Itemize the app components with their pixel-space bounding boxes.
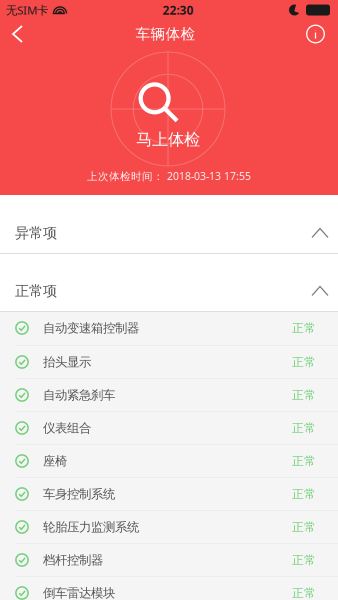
staticText: 正常	[292, 321, 316, 335]
button[interactable]: 仪表组合	[0, 412, 338, 445]
button[interactable]: Info	[295, 19, 338, 49]
staticText: 正常	[292, 454, 316, 468]
staticText: 正常	[292, 355, 316, 369]
button[interactable]: 轮胎压力监测系统	[0, 511, 338, 544]
staticText: 正常	[292, 421, 316, 435]
button[interactable]: 档杆控制器	[0, 544, 338, 577]
staticText: 倒车雷达模块	[43, 585, 115, 600]
staticText: 正常	[292, 586, 316, 600]
staticText: 正常	[292, 487, 316, 501]
button[interactable]: 异常项	[0, 195, 338, 254]
staticText: 座椅	[43, 453, 67, 469]
staticText: 自动紧急刹车	[43, 387, 115, 403]
button[interactable]: 自动变速箱控制器	[0, 312, 338, 346]
staticText: 正常项	[15, 282, 57, 300]
staticText: 上次体检时间： 2018-03-13 17:55	[87, 169, 251, 183]
staticText: 正常	[292, 388, 316, 402]
button[interactable]: 倒车雷达模块	[0, 577, 338, 600]
staticText: 22:30	[162, 2, 193, 18]
staticText: 自动变速箱控制器	[43, 320, 139, 336]
button[interactable]: 自动紧急刹车	[0, 379, 338, 412]
button[interactable]: 车身控制系统	[0, 478, 338, 511]
staticText: 无SIM卡	[6, 2, 48, 18]
button[interactable]: 马上体检	[108, 79, 228, 153]
staticText: 档杆控制器	[43, 552, 103, 568]
button[interactable]: 抬头显示	[0, 346, 338, 379]
button[interactable]: 座椅	[0, 445, 338, 478]
staticText: 车辆体检	[135, 25, 195, 43]
staticText: 马上体检	[136, 129, 200, 150]
staticText: 车身控制系统	[43, 486, 115, 502]
button[interactable]: Back	[0, 19, 36, 49]
staticText: 正常	[292, 520, 316, 534]
staticText: 抬头显示	[43, 354, 91, 370]
staticText: 仪表组合	[43, 420, 91, 436]
staticText: 正常	[292, 553, 316, 567]
button[interactable]: 正常项	[0, 254, 338, 312]
staticText: 轮胎压力监测系统	[43, 519, 139, 535]
staticText: 异常项	[15, 224, 57, 242]
